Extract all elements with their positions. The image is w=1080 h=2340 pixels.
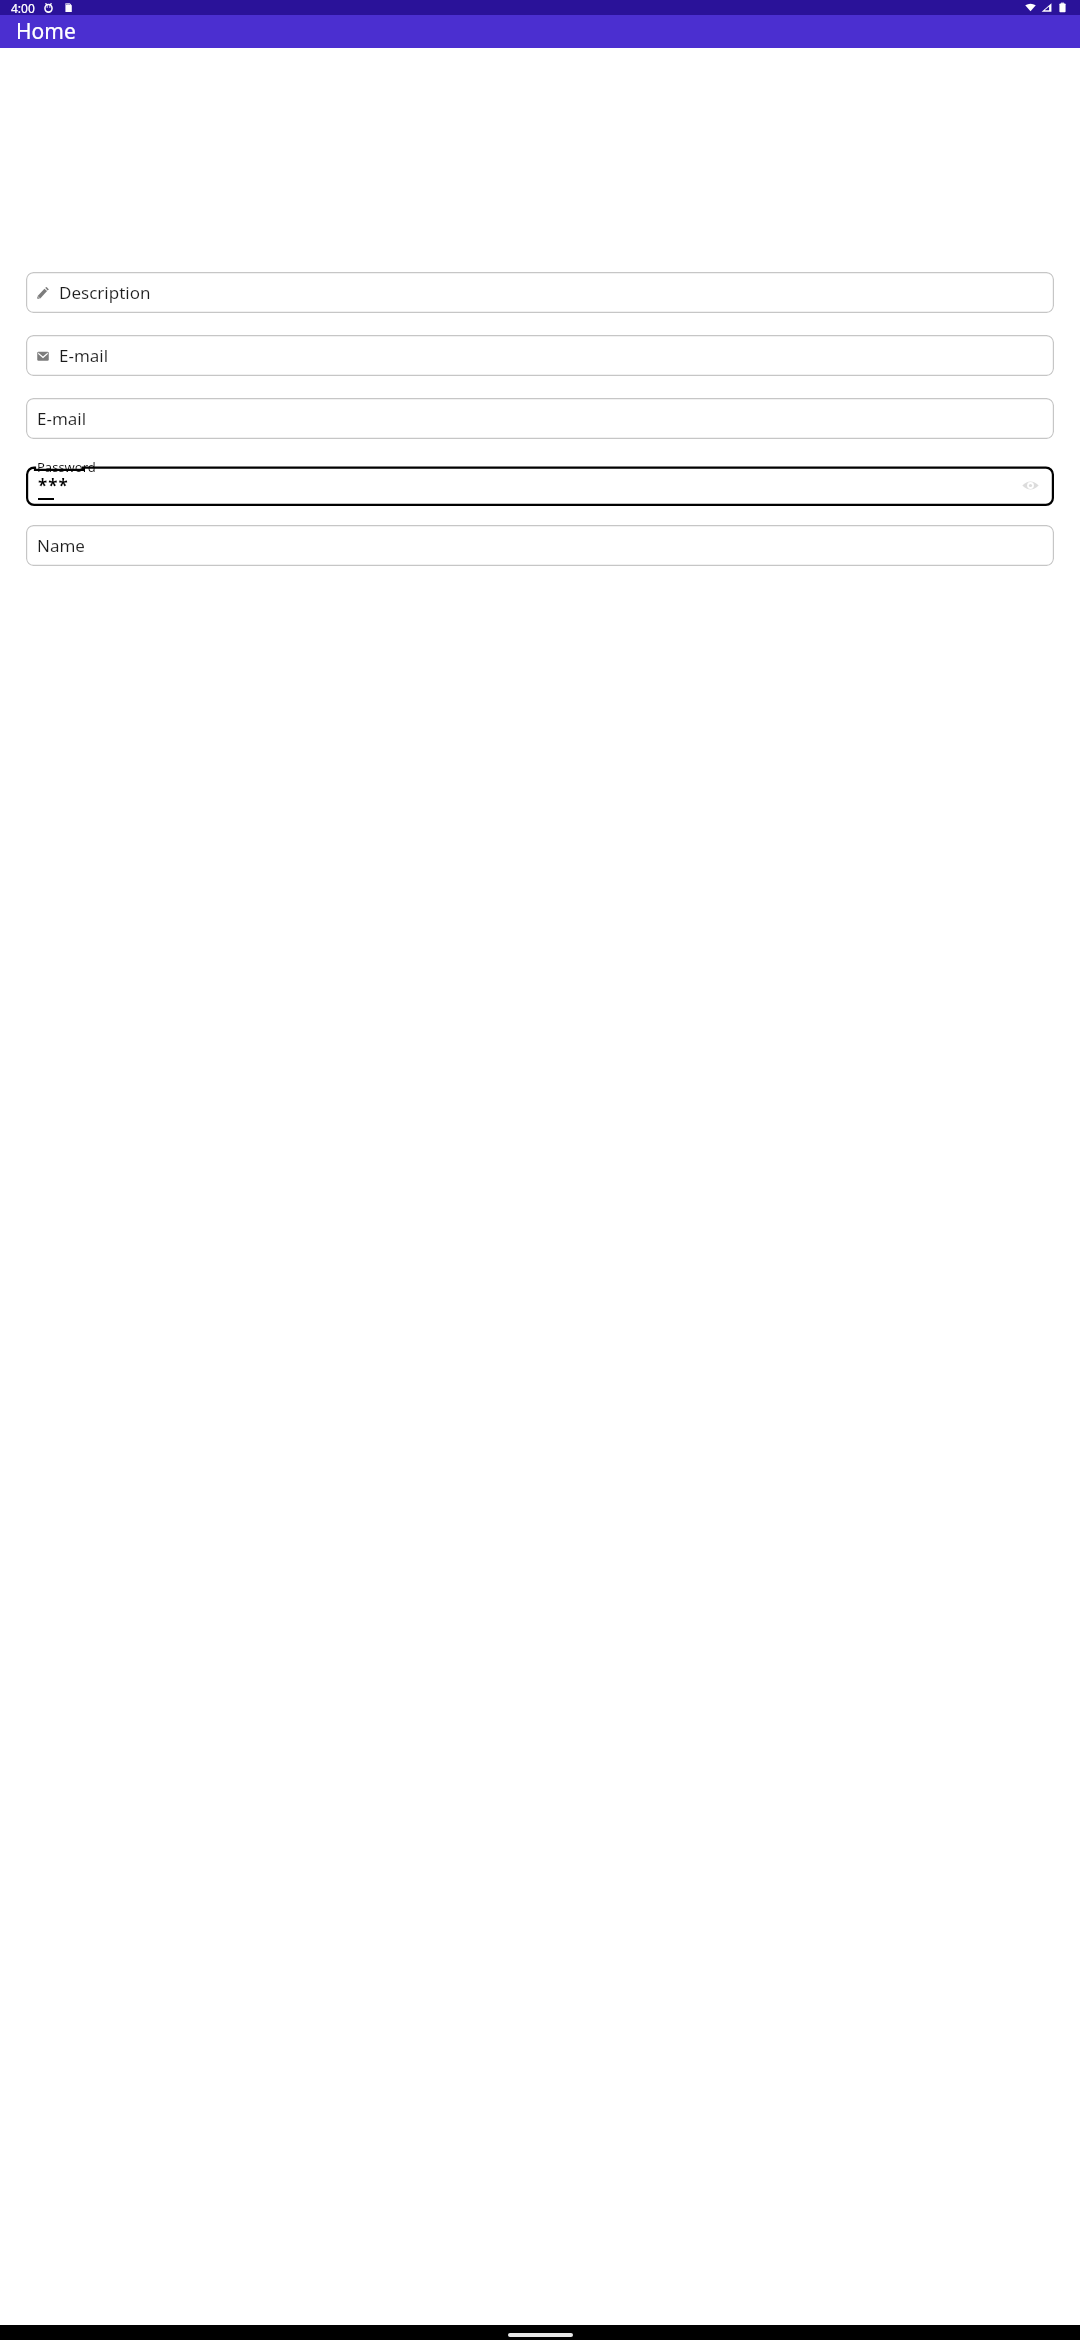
staticText: Password <box>37 458 96 476</box>
staticText: *** <box>38 474 69 497</box>
button[interactable]: Show password <box>1019 474 1041 496</box>
staticText: E-mail <box>59 344 109 367</box>
button[interactable]: Name <box>26 525 1054 566</box>
button[interactable]: E-mail <box>26 335 1054 376</box>
staticText: E-mail <box>37 407 87 430</box>
button[interactable]: Password <box>26 460 1054 506</box>
staticText: Name <box>37 534 85 557</box>
button[interactable]: E-mail <box>26 398 1054 439</box>
staticText: 4:00 <box>11 0 35 15</box>
button[interactable]: Description <box>26 272 1054 313</box>
staticText: Home <box>16 17 76 46</box>
staticText: Description <box>59 281 151 304</box>
